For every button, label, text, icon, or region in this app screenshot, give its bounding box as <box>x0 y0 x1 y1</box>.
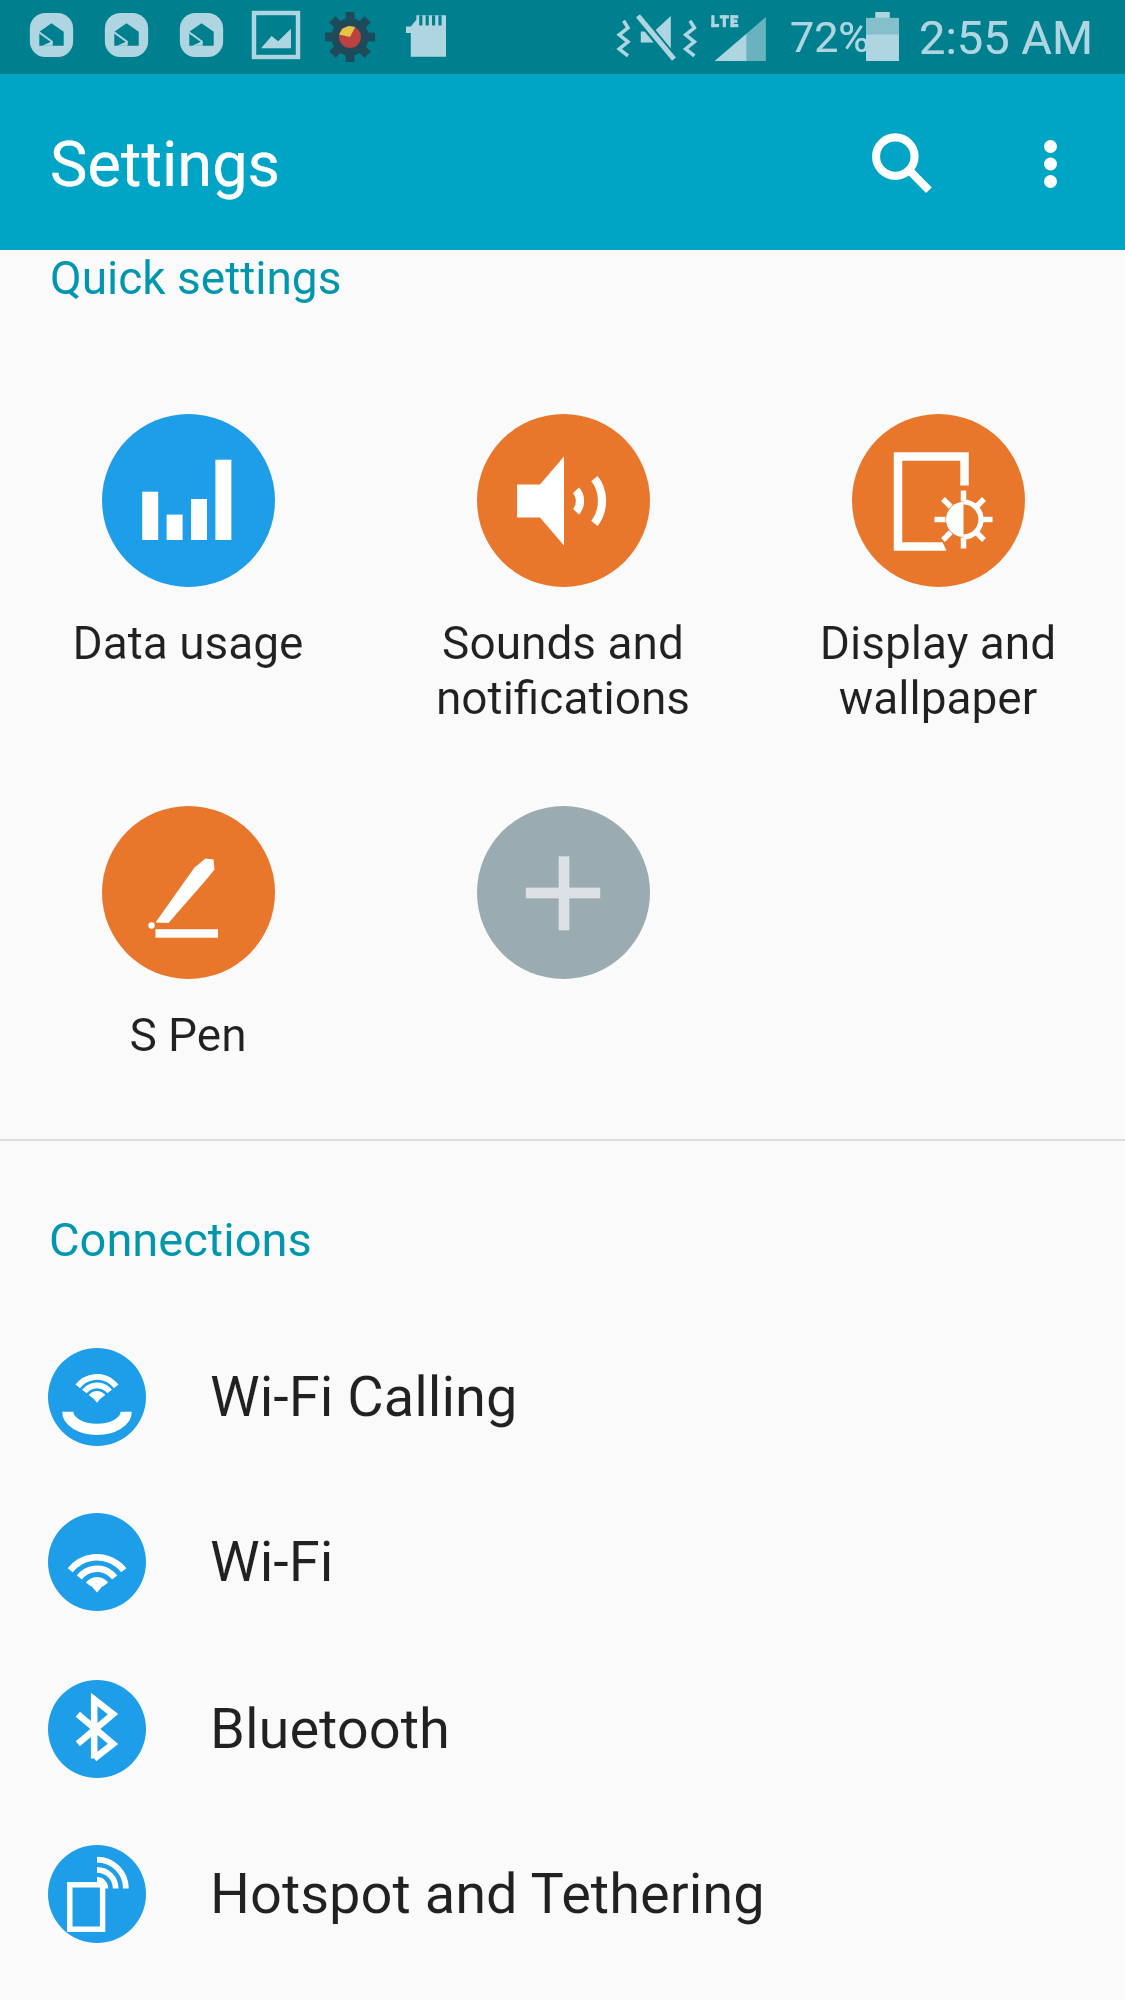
button[interactable]: Display and wallpaper <box>751 402 1125 732</box>
staticText: Wi-Fi Calling <box>210 1364 518 1430</box>
button[interactable]: S Pen <box>1 794 375 1124</box>
button[interactable]: Hotspot and Tethering <box>0 1811 1125 1977</box>
button[interactable]: Search <box>824 92 964 232</box>
staticText: Hotspot and Tethering <box>210 1861 765 1927</box>
staticText: Data usage <box>1 616 375 670</box>
button[interactable]: Data usage <box>1 402 375 732</box>
staticText: Connections <box>49 1212 312 1267</box>
button[interactable] <box>376 794 750 1124</box>
button[interactable]: Sounds and notifications <box>376 402 750 732</box>
button[interactable]: Bluetooth <box>0 1646 1125 1812</box>
staticText: S Pen <box>1 1008 375 1062</box>
button[interactable]: Wi-Fi Calling <box>0 1314 1125 1480</box>
staticText: Bluetooth <box>210 1696 450 1762</box>
staticText: 2:55 AM <box>919 10 1093 65</box>
button[interactable]: Wi-Fi <box>0 1479 1125 1645</box>
staticText: Display and wallpaper <box>751 616 1125 726</box>
button[interactable]: More options <box>982 92 1122 232</box>
staticText: Wi-Fi <box>210 1529 334 1595</box>
staticText: 72% <box>790 12 870 62</box>
staticText: Sounds and notifications <box>376 616 750 726</box>
staticText: Quick settings <box>50 251 342 305</box>
staticText: Settings <box>50 128 281 202</box>
